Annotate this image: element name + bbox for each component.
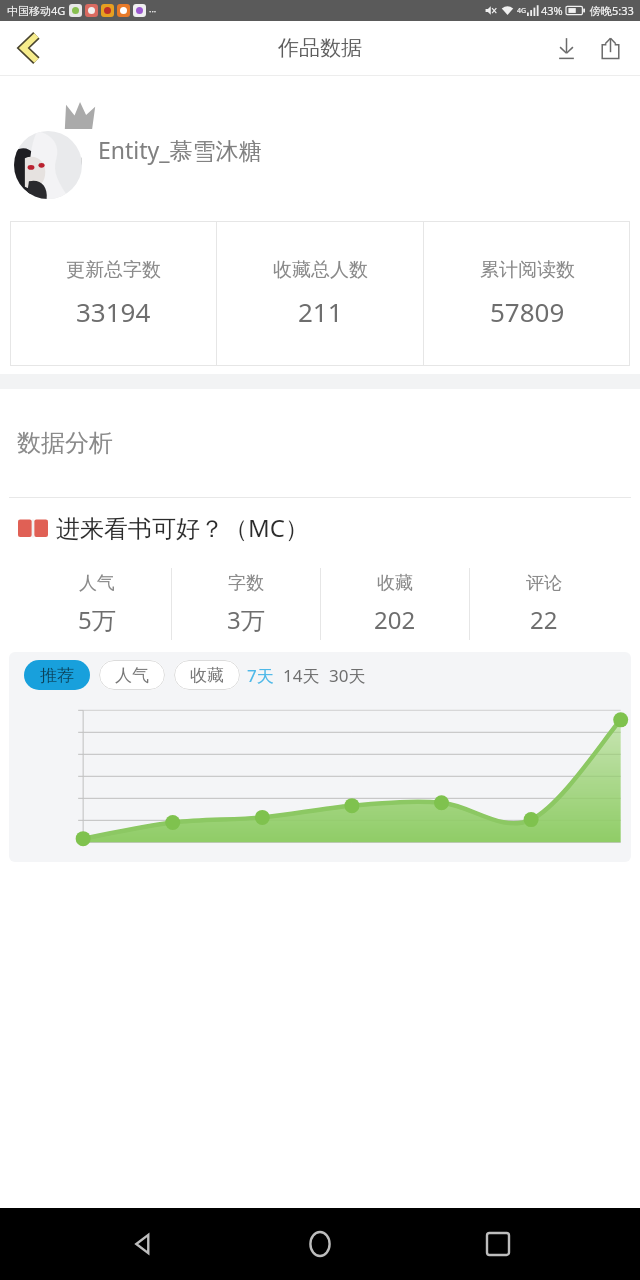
button[interactable]: 7天: [247, 660, 274, 690]
button[interactable]: 收藏总人数: [217, 221, 423, 366]
staticText: 5万: [78, 603, 116, 636]
button[interactable]: 更新总字数: [10, 221, 216, 366]
staticText: 数据分析: [17, 428, 113, 458]
staticText: 4G: [517, 6, 527, 16]
button[interactable]: 收藏: [174, 660, 240, 690]
button[interactable]: Share: [588, 26, 632, 70]
button[interactable]: 人气: [22, 556, 171, 652]
button[interactable]: Back: [108, 1209, 178, 1279]
staticText: 累计阅读数: [480, 258, 575, 282]
staticText: 人气: [115, 665, 149, 686]
button[interactable]: 14天: [283, 660, 320, 690]
button[interactable]: 收藏: [321, 556, 469, 652]
button[interactable]: Home: [285, 1209, 355, 1279]
staticText: 进来看书可好？（MC）: [56, 511, 309, 544]
staticText: 33194: [76, 294, 151, 329]
staticText: 收藏总人数: [273, 258, 368, 282]
staticText: 人气: [79, 572, 115, 595]
staticText: 评论: [526, 572, 562, 595]
staticText: 更新总字数: [66, 258, 161, 282]
button[interactable]: Back: [6, 24, 54, 72]
staticText: 57809: [490, 294, 565, 329]
staticText: 202: [374, 603, 416, 636]
staticText: 211: [298, 294, 343, 329]
staticText: 字数: [228, 572, 264, 595]
staticText: 14天: [283, 664, 320, 687]
button[interactable]: 字数: [172, 556, 320, 652]
staticText: 作品数据: [278, 35, 362, 61]
staticText: ···: [149, 5, 157, 17]
button[interactable]: 评论: [470, 556, 618, 652]
staticText: 22: [530, 603, 558, 636]
button[interactable]: 30天: [329, 660, 366, 690]
button[interactable]: 人气: [99, 660, 165, 690]
staticText: 3万: [227, 603, 265, 636]
staticText: 30天: [329, 664, 366, 687]
staticText: 收藏: [377, 572, 413, 595]
button[interactable]: Download: [544, 26, 588, 70]
button[interactable]: 推荐: [24, 660, 90, 690]
button[interactable]: 进来看书可好？（MC）: [0, 498, 640, 556]
button[interactable]: Recents: [463, 1209, 533, 1279]
button[interactable]: Entity_慕雪沐糖: [14, 94, 640, 204]
staticText: 傍晚5:33: [590, 3, 634, 18]
staticText: 推荐: [40, 665, 74, 686]
staticText: Entity_慕雪沐糖: [98, 134, 262, 165]
staticText: 43%: [541, 3, 563, 18]
staticText: 收藏: [190, 665, 224, 686]
staticText: 7天: [247, 664, 274, 687]
button[interactable]: 累计阅读数: [424, 221, 630, 366]
staticText: 中国移动4G: [7, 3, 66, 18]
